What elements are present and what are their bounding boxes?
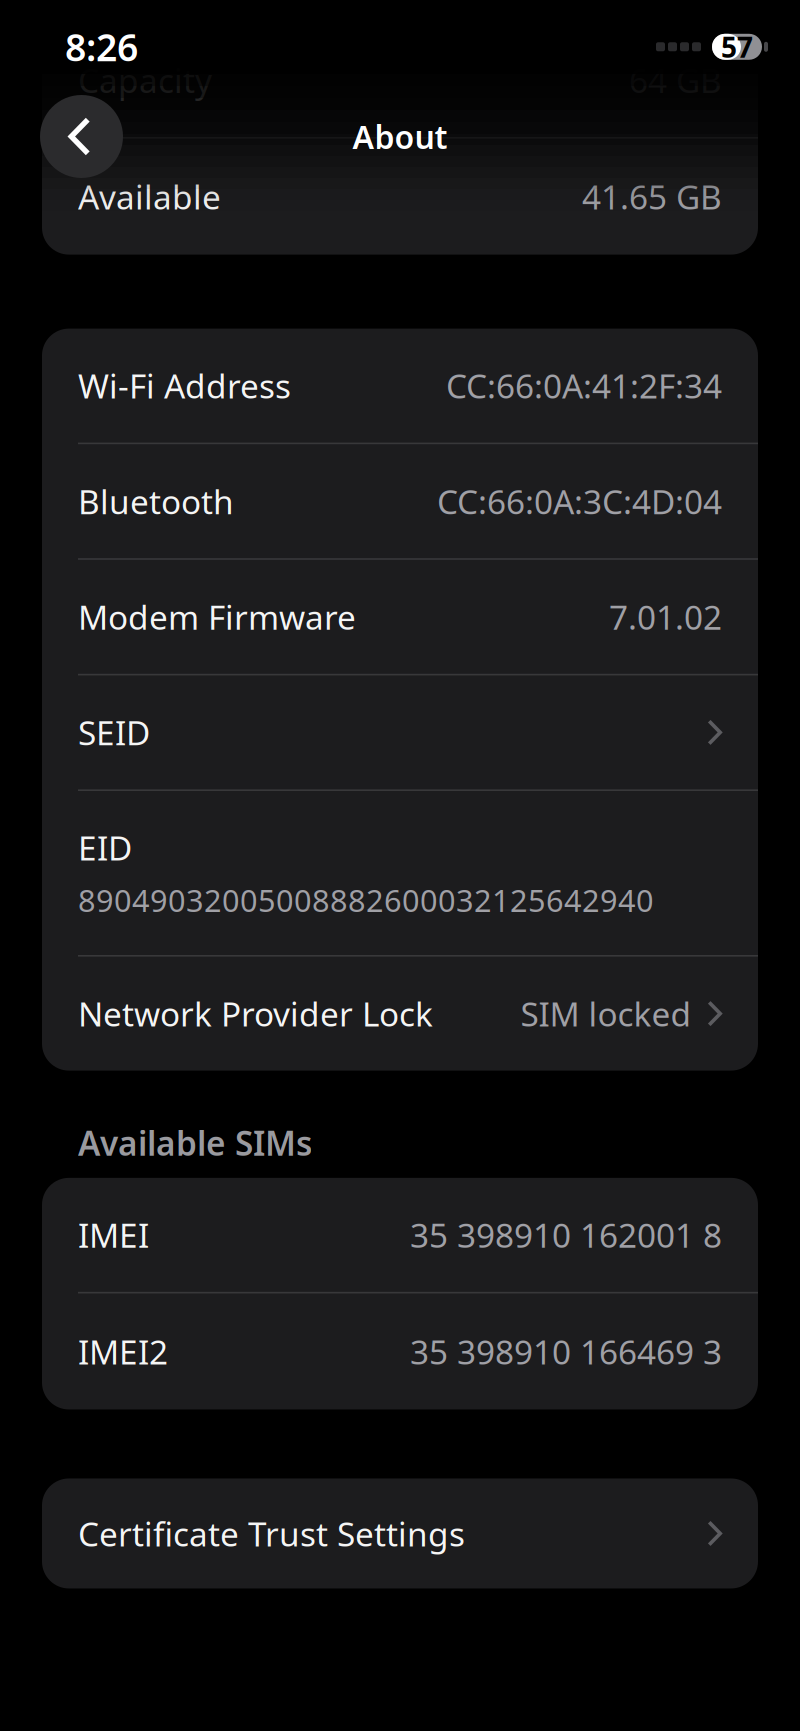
button[interactable]: IMEI2 [42, 1293, 758, 1409]
staticText: 35 398910 162001 8 [410, 1213, 722, 1257]
button[interactable]: Modem Firmware [42, 560, 758, 674]
staticText: SEID [78, 710, 150, 755]
button[interactable]: Network Provider Lock [42, 957, 758, 1071]
staticText: Modem Firmware [78, 595, 356, 639]
button[interactable]: IMEI [42, 1178, 758, 1292]
staticText: 64 GB [629, 58, 722, 102]
button[interactable]: Available [42, 139, 758, 255]
staticText: 7.01.02 [609, 595, 722, 639]
staticText: 89049032005008882600032125642940 [78, 880, 654, 920]
button[interactable]: Wi-Fi Address [42, 329, 758, 443]
staticText: Capacity [78, 58, 212, 102]
staticText: Network Provider Lock [78, 991, 433, 1036]
button[interactable]: SEID [42, 675, 758, 789]
staticText: Available [78, 174, 221, 219]
staticText: 57 [721, 28, 753, 65]
staticText: IMEI [78, 1213, 149, 1257]
staticText: SIM locked [520, 991, 691, 1036]
staticText: 35 398910 166469 3 [410, 1329, 722, 1374]
staticText: IMEI2 [78, 1329, 168, 1374]
staticText: 8:26 [65, 22, 138, 72]
staticText: Bluetooth [78, 479, 234, 523]
button[interactable]: Bluetooth [42, 444, 758, 558]
staticText: EID [78, 825, 132, 870]
button[interactable]: EID [42, 791, 758, 955]
staticText: Certificate Trust Settings [78, 1511, 465, 1556]
button[interactable]: Back [40, 95, 123, 178]
staticText: Wi-Fi Address [78, 363, 291, 408]
staticText: About [352, 115, 447, 158]
staticText: CC:66:0A:41:2F:34 [446, 363, 722, 408]
staticText: CC:66:0A:3C:4D:04 [437, 479, 722, 523]
button[interactable]: Certificate Trust Settings [42, 1478, 758, 1588]
button[interactable]: Capacity [42, 23, 758, 137]
staticText: Available SIMs [78, 1121, 312, 1165]
staticText: 41.65 GB [582, 174, 722, 219]
